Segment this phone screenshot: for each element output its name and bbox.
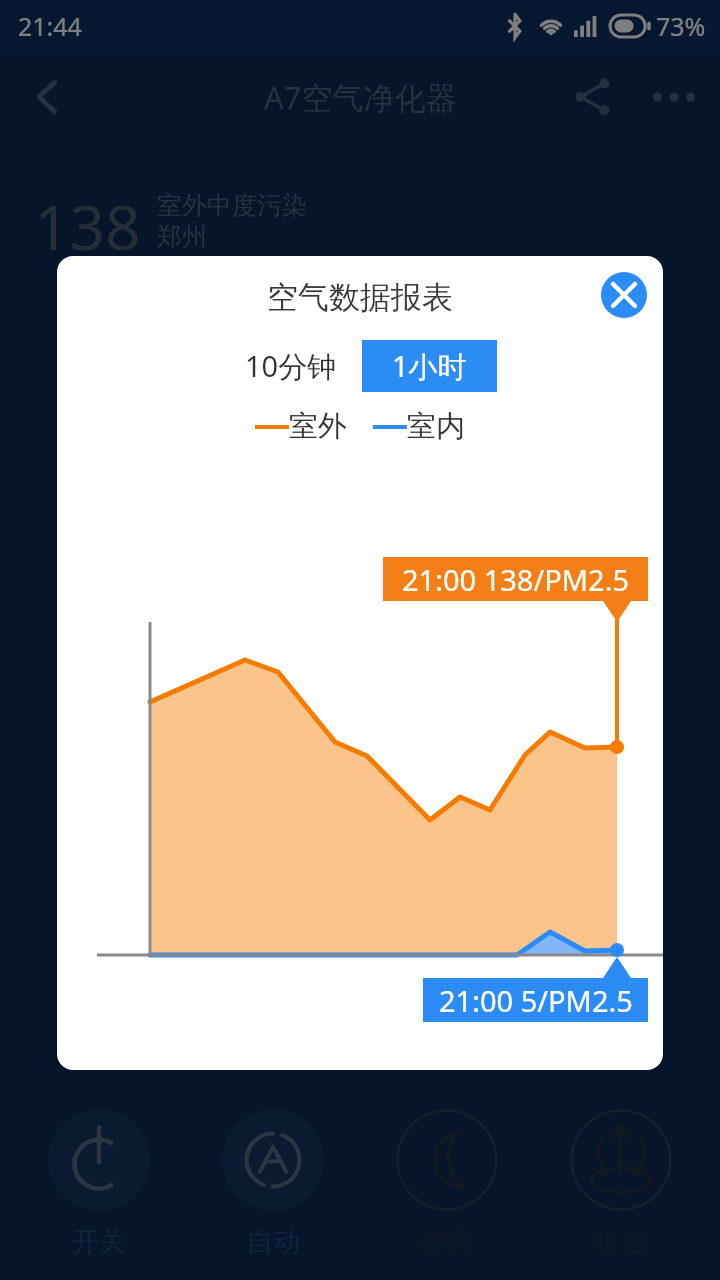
button[interactable]: Back: [20, 69, 76, 125]
staticText: 室外中度污染: [157, 190, 307, 221]
staticText: 开关: [72, 1225, 126, 1259]
staticText: 10分钟: [245, 346, 337, 386]
button[interactable]: 极速: [546, 1085, 696, 1259]
staticText: A7空气净化器: [264, 76, 457, 118]
staticText: 极速: [594, 1225, 648, 1259]
button[interactable]: 自动: [198, 1085, 348, 1259]
staticText: 空气数据报表: [267, 278, 453, 317]
staticText: 21:00 138/PM2.5: [402, 560, 630, 599]
staticText: 21:00 5/PM2.5: [439, 981, 633, 1020]
staticText: 21:44: [18, 9, 82, 43]
staticText: 73%: [656, 9, 706, 43]
button[interactable]: 开关: [24, 1085, 174, 1259]
staticText: 室外: [289, 408, 347, 445]
staticText: 1小时: [392, 346, 467, 386]
button[interactable]: Close: [601, 272, 647, 318]
button[interactable]: Share: [566, 71, 618, 123]
staticText: 静音: [420, 1225, 474, 1259]
button[interactable]: More options: [648, 71, 700, 123]
button[interactable]: 静音: [372, 1085, 522, 1259]
staticText: 自动: [246, 1225, 300, 1259]
staticText: 138: [34, 184, 141, 268]
button[interactable]: 10分钟: [223, 340, 358, 392]
staticText: 室内: [407, 408, 465, 445]
button[interactable]: 1小时: [362, 340, 497, 392]
staticText: 郑州: [157, 221, 207, 252]
